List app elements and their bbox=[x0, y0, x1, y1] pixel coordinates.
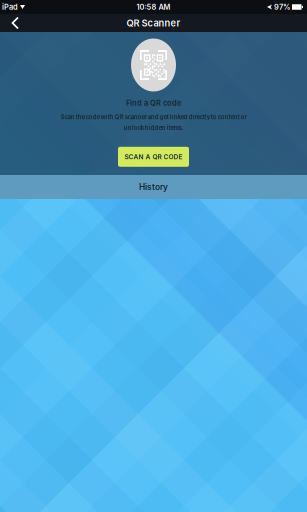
staticText: Find a QR code bbox=[126, 98, 181, 107]
staticText: Scan the code with QR scanner and get li… bbox=[60, 113, 246, 131]
button[interactable]: SCAN A QR CODE bbox=[118, 147, 189, 167]
staticText: 10:58 AM bbox=[136, 2, 170, 11]
staticText: History bbox=[139, 182, 168, 192]
staticText: QR Scanner bbox=[126, 17, 180, 29]
staticText: SCAN A QR CODE bbox=[124, 153, 182, 161]
staticText: iPad bbox=[2, 2, 18, 11]
staticText: 97% bbox=[274, 2, 290, 11]
button[interactable]: Back bbox=[7, 14, 24, 32]
